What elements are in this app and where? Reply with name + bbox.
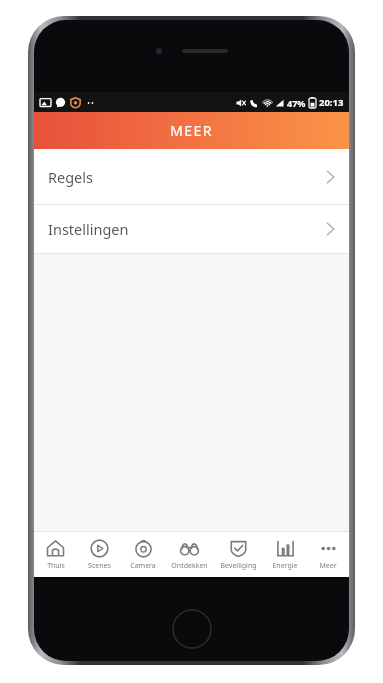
staticText: 20:13 xyxy=(319,96,344,109)
button[interactable]: Meer xyxy=(307,532,349,577)
button[interactable]: Ontdekken xyxy=(165,532,214,577)
staticText: Instellingen xyxy=(48,219,326,239)
staticText: Scenes xyxy=(88,561,111,571)
staticText: 47% xyxy=(287,97,306,109)
staticText: Thuis xyxy=(47,561,65,571)
staticText: Camera xyxy=(130,561,156,571)
button[interactable]: Thuis xyxy=(34,532,77,577)
button[interactable]: Camera xyxy=(121,532,165,577)
button[interactable]: Energie xyxy=(263,532,307,577)
staticText: Ontdekken xyxy=(171,561,208,571)
button[interactable]: Instellingen xyxy=(34,205,349,253)
staticText: MEER xyxy=(170,121,213,140)
staticText: Meer xyxy=(319,561,337,571)
button[interactable]: Regels xyxy=(34,149,349,204)
button[interactable]: Beveiliging xyxy=(214,532,263,577)
staticText: Beveiliging xyxy=(220,561,257,571)
staticText: Energie xyxy=(272,561,298,571)
staticText: Regels xyxy=(48,167,326,187)
button[interactable]: Scenes xyxy=(77,532,121,577)
